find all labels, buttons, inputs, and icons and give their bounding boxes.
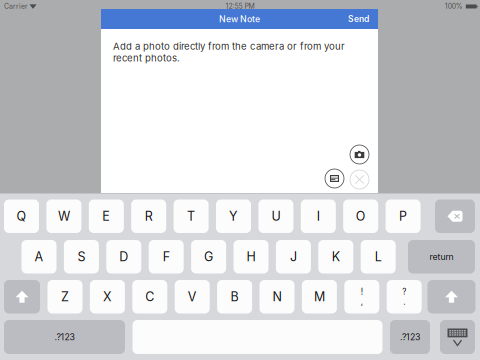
button[interactable]: R xyxy=(131,199,166,233)
staticText: X xyxy=(103,289,112,304)
staticText: B xyxy=(231,289,239,304)
staticText: U xyxy=(271,209,280,224)
button[interactable]: Y xyxy=(216,199,251,233)
staticText: Y xyxy=(229,209,238,224)
staticText: L xyxy=(375,249,382,264)
staticText: A xyxy=(34,249,43,264)
staticText: H xyxy=(246,249,255,264)
staticText: M xyxy=(314,289,325,304)
staticText: 100% xyxy=(445,2,463,10)
button[interactable]: Hide keyboard xyxy=(440,320,475,354)
button[interactable]: Shift xyxy=(4,280,40,313)
staticText: G xyxy=(204,249,213,264)
staticText: T xyxy=(187,209,195,224)
button[interactable]: E xyxy=(89,199,124,233)
button[interactable]: Take photo xyxy=(350,145,369,164)
button[interactable]: O xyxy=(343,199,378,233)
button[interactable]: W xyxy=(46,199,81,233)
staticText: Add a photo directly from the camera or … xyxy=(113,40,345,64)
button[interactable]: X xyxy=(90,280,125,313)
staticText: I xyxy=(317,209,320,224)
button[interactable]: ! xyxy=(344,280,379,313)
staticText: E xyxy=(102,209,110,224)
button[interactable]: return xyxy=(408,240,475,273)
staticText: R xyxy=(145,209,153,224)
staticText: ? xyxy=(402,287,406,297)
button[interactable]: J xyxy=(276,240,311,273)
button[interactable]: ? xyxy=(387,280,422,313)
button[interactable]: A xyxy=(21,240,56,273)
button[interactable]: V xyxy=(175,280,210,313)
button[interactable]: L xyxy=(361,240,396,273)
button[interactable]: S xyxy=(64,240,99,273)
staticText: N xyxy=(272,289,281,304)
button[interactable]: Send xyxy=(339,9,378,29)
button[interactable]: H xyxy=(233,240,268,273)
staticText: W xyxy=(58,209,70,224)
staticText: P xyxy=(399,209,407,224)
button[interactable]: P xyxy=(386,199,421,233)
button[interactable]: .?123 xyxy=(4,320,125,354)
button[interactable]: Z xyxy=(47,280,82,313)
staticText: K xyxy=(332,249,340,264)
staticText: . xyxy=(403,297,405,307)
staticText: F xyxy=(163,249,170,264)
staticText: Carrier xyxy=(4,2,28,10)
button[interactable]: Close xyxy=(350,170,369,189)
button[interactable]: I xyxy=(301,199,336,233)
button[interactable]: .?123 xyxy=(390,320,430,354)
button[interactable]: N xyxy=(259,280,294,313)
staticText: J xyxy=(290,249,297,264)
staticText: D xyxy=(119,249,128,264)
button[interactable]: F xyxy=(149,240,184,273)
button[interactable]: U xyxy=(258,199,293,233)
button[interactable]: C xyxy=(132,280,167,313)
staticText: Send xyxy=(348,14,369,24)
staticText: O xyxy=(356,209,366,224)
button[interactable]: Shift xyxy=(427,280,475,313)
staticText: V xyxy=(188,289,197,304)
staticText: ! xyxy=(361,287,363,297)
staticText: New Note xyxy=(219,14,260,24)
button[interactable]: Choose from library xyxy=(325,169,344,188)
button[interactable]: G xyxy=(191,240,226,273)
staticText: , xyxy=(361,297,363,307)
staticText: .?123 xyxy=(54,332,74,342)
staticText: Q xyxy=(16,209,26,224)
staticText: return xyxy=(429,251,453,262)
staticText: Z xyxy=(61,289,69,304)
button[interactable]: T xyxy=(174,199,209,233)
button[interactable]: Q xyxy=(4,199,39,233)
button[interactable]: D xyxy=(106,240,141,273)
staticText: .?123 xyxy=(400,332,420,342)
staticText: S xyxy=(77,249,85,264)
button[interactable]: B xyxy=(217,280,252,313)
button[interactable]: M xyxy=(302,280,337,313)
button[interactable]: K xyxy=(318,240,353,273)
staticText: C xyxy=(145,289,154,304)
staticText: 12:55 PM xyxy=(225,2,254,10)
button[interactable]: Delete xyxy=(435,199,475,233)
